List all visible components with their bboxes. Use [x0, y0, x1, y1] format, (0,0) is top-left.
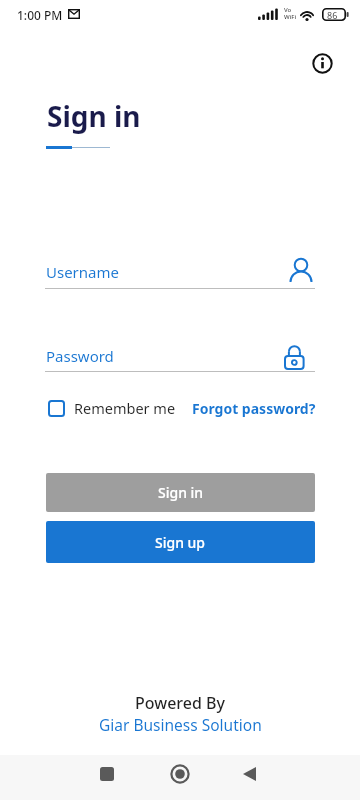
button[interactable] [160, 755, 200, 793]
staticText: Password [46, 346, 114, 366]
staticText: Username [46, 262, 119, 282]
staticText: Sign in [158, 483, 204, 502]
button[interactable]: Giar Business Solution [99, 714, 262, 735]
button[interactable] [87, 755, 127, 793]
staticText: Vo [284, 6, 292, 14]
button[interactable]: Sign in [46, 473, 315, 512]
staticText: WiFi [284, 13, 297, 21]
staticText: Remember me [74, 398, 176, 418]
button[interactable]: Remember me [46, 398, 176, 418]
button[interactable] [308, 49, 336, 77]
staticText: 86 [327, 9, 338, 21]
staticText: Sign up [155, 533, 206, 552]
button[interactable] [230, 755, 270, 793]
button[interactable]: Forgot password? [192, 399, 316, 418]
staticText: 1:00 PM [17, 7, 63, 23]
staticText: Powered By [135, 692, 225, 714]
staticText: Sign in [47, 97, 141, 135]
button[interactable]: Sign up [46, 521, 315, 563]
